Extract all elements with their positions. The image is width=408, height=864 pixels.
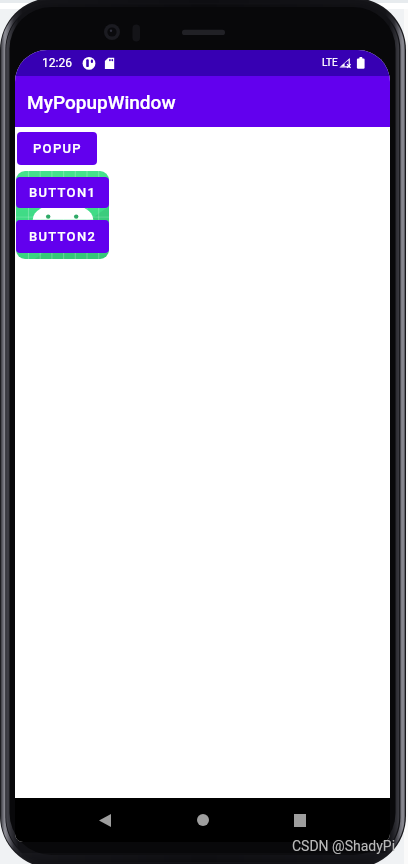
button[interactable]: Home bbox=[182, 799, 223, 841]
staticText: LTE bbox=[322, 57, 338, 69]
button[interactable]: BUTTON2 bbox=[16, 220, 109, 253]
staticText: BUTTON2 bbox=[29, 229, 97, 244]
staticText: CSDN @ShadyPi bbox=[292, 838, 396, 854]
button[interactable]: BUTTON1 bbox=[16, 177, 109, 208]
button[interactable]: Back bbox=[84, 799, 125, 841]
staticText: MyPopupWindow bbox=[27, 91, 176, 113]
staticText: 12:26 bbox=[42, 56, 72, 70]
staticText: POPUP bbox=[33, 141, 82, 156]
button[interactable]: POPUP bbox=[17, 132, 97, 165]
button[interactable]: Recents bbox=[279, 799, 320, 841]
staticText: BUTTON1 bbox=[29, 185, 97, 200]
